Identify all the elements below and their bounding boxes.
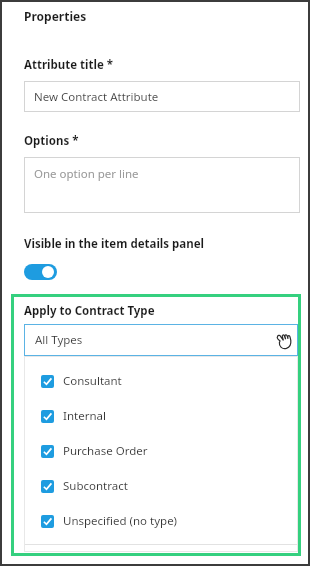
staticText: New Contract Attribute xyxy=(34,89,159,105)
staticText: Unspecified (no type) xyxy=(63,513,178,529)
staticText: Visible in the item details panel xyxy=(24,236,204,252)
staticText: Consultant xyxy=(63,373,122,389)
button[interactable]: Purchase Order xyxy=(24,424,298,459)
button[interactable]: Unspecified (no type) xyxy=(24,494,298,529)
button[interactable]: All Types xyxy=(24,324,298,356)
staticText: All Types xyxy=(35,332,83,348)
staticText: Properties xyxy=(24,8,87,24)
staticText: Internal xyxy=(63,408,106,424)
button[interactable]: Consultant xyxy=(24,356,298,389)
button[interactable]: Select all xyxy=(24,545,298,552)
staticText: One option per line xyxy=(34,166,139,182)
button[interactable]: New Contract Attribute xyxy=(24,81,300,112)
button[interactable]: One option per line xyxy=(24,157,300,213)
button[interactable]: Subcontract xyxy=(24,459,298,494)
staticText: Attribute title * xyxy=(24,57,114,73)
staticText: Purchase Order xyxy=(63,443,148,459)
button[interactable]: Internal xyxy=(24,389,298,424)
staticText: Apply to Contract Type xyxy=(24,303,155,319)
staticText: Subcontract xyxy=(63,478,128,494)
button[interactable]: Visible in the item details panel toggle xyxy=(24,264,57,280)
staticText: Options * xyxy=(24,133,79,149)
